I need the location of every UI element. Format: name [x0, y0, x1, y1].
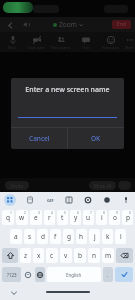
- button[interactable]: n: [88, 248, 100, 263]
- button[interactable]: Start video: [24, 32, 48, 52]
- staticText: Enter a new screen name: [11, 85, 124, 95]
- button[interactable]: Key: [2, 248, 18, 263]
- button[interactable]: 0: [122, 210, 133, 225]
- button[interactable]: ?123: [2, 267, 21, 282]
- button[interactable]: a: [10, 229, 22, 244]
- button[interactable]: Hide keyboard: [9, 288, 18, 297]
- button[interactable]: Mute all: [89, 181, 116, 190]
- button[interactable]: Toolbar 1: [20, 192, 40, 208]
- button[interactable]: Emoji: [22, 267, 34, 282]
- staticText: Chat: [82, 45, 90, 50]
- staticText: g: [67, 232, 71, 241]
- button[interactable]: d: [37, 229, 48, 244]
- staticText: r: [48, 213, 51, 222]
- staticText: w: [19, 213, 25, 222]
- staticText: 9: [116, 211, 118, 215]
- button[interactable]: l: [115, 229, 126, 244]
- staticText: 5: [64, 211, 66, 215]
- button[interactable]: More options: [118, 181, 131, 190]
- button[interactable]: k: [102, 229, 113, 244]
- staticText: n: [92, 251, 97, 260]
- staticText: d: [41, 232, 45, 241]
- button[interactable]: Invite: [5, 181, 29, 190]
- button[interactable]: Toolbar 3: [59, 192, 78, 208]
- staticText: v: [64, 251, 68, 260]
- button[interactable]: Speaker: [20, 18, 33, 31]
- button[interactable]: j: [89, 229, 100, 244]
- button[interactable]: 6: [70, 210, 81, 225]
- button[interactable]: OK: [68, 128, 124, 149]
- button[interactable]: Back: [4, 19, 16, 31]
- button[interactable]: Mute: [0, 32, 24, 52]
- button[interactable]: 9: [109, 210, 120, 225]
- button[interactable]: 7: [83, 210, 94, 225]
- button[interactable]: Reactions: [98, 32, 123, 52]
- staticText: English: [66, 272, 82, 278]
- staticText: 2: [24, 211, 26, 215]
- staticText: f: [54, 232, 57, 241]
- button[interactable]: Toolbar 0: [0, 192, 20, 208]
- staticText: a: [14, 232, 18, 241]
- button[interactable]: g: [63, 229, 74, 244]
- button[interactable]: .: [103, 267, 113, 282]
- button[interactable]: z: [20, 248, 31, 263]
- button[interactable]: End: [112, 20, 131, 29]
- staticText: z: [24, 251, 28, 260]
- staticText: End: [117, 21, 126, 28]
- staticText: .: [107, 271, 109, 278]
- button[interactable]: x: [33, 248, 44, 263]
- button[interactable]: [18, 108, 117, 118]
- staticText: u: [86, 213, 91, 222]
- button[interactable]: Toolbar 6: [116, 192, 135, 208]
- staticText: y: [74, 213, 78, 222]
- button[interactable]: Participants: [48, 32, 73, 52]
- staticText: b: [78, 251, 82, 260]
- staticText: 7: [90, 211, 92, 215]
- button[interactable]: 8: [96, 210, 107, 225]
- staticText: Zoom: [59, 20, 77, 29]
- button[interactable]: 5: [57, 210, 68, 225]
- staticText: Participants: [50, 45, 71, 50]
- staticText: t: [61, 213, 64, 222]
- button[interactable]: f: [50, 229, 61, 244]
- staticText: j: [94, 232, 96, 241]
- staticText: 3: [38, 211, 40, 215]
- button[interactable]: Done: [115, 267, 133, 282]
- staticText: GIF: [47, 198, 54, 203]
- button[interactable]: Toolbar 2: [40, 192, 59, 208]
- button[interactable]: 2: [16, 210, 28, 225]
- staticText: OK: [91, 134, 101, 143]
- button[interactable]: Toolbar 4: [78, 192, 97, 208]
- button[interactable]: h: [76, 229, 87, 244]
- button[interactable]: Toolbar 5: [97, 192, 116, 208]
- staticText: o: [113, 213, 117, 222]
- button[interactable]: 4: [44, 210, 55, 225]
- staticText: Mute: [8, 45, 17, 50]
- staticText: c: [50, 251, 54, 260]
- staticText: m: [105, 251, 112, 260]
- button[interactable]: More: [123, 32, 135, 52]
- button[interactable]: c: [46, 248, 58, 263]
- staticText: e: [34, 213, 38, 222]
- staticText: k: [106, 232, 110, 241]
- staticText: s: [28, 232, 32, 241]
- button[interactable]: 1: [2, 210, 14, 225]
- button[interactable]: Language: [35, 267, 45, 282]
- staticText: Cancel: [29, 134, 50, 143]
- button[interactable]: b: [74, 248, 86, 263]
- button[interactable]: English: [47, 267, 101, 282]
- staticText: i: [101, 213, 103, 222]
- staticText: Start video: [27, 45, 46, 50]
- button[interactable]: Cancel: [11, 128, 67, 149]
- button[interactable]: m: [102, 248, 114, 263]
- staticText: Reactions: [102, 45, 119, 50]
- staticText: 1: [10, 211, 12, 215]
- button[interactable]: v: [60, 248, 72, 263]
- button[interactable]: Key: [116, 248, 133, 263]
- button[interactable]: 3: [30, 210, 42, 225]
- staticText: x: [37, 251, 41, 260]
- button[interactable]: s: [24, 229, 35, 244]
- staticText: h: [79, 232, 84, 241]
- button[interactable]: Chat: [73, 32, 98, 52]
- staticText: l: [120, 232, 122, 241]
